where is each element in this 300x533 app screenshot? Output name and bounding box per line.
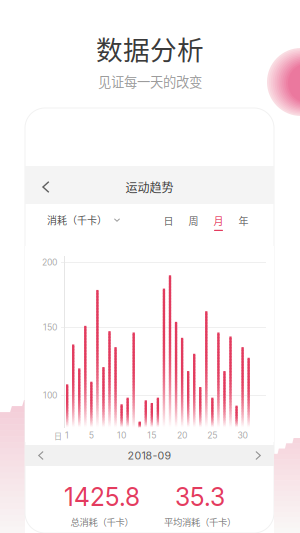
button[interactable]: Previous month [25, 445, 57, 466]
staticText: 20 [177, 430, 187, 440]
staticText: 平均消耗（千卡） [164, 515, 236, 528]
staticText: 1 [65, 430, 69, 440]
button[interactable]: 年 [231, 205, 256, 235]
button[interactable]: 周 [181, 205, 206, 235]
button[interactable]: Next month [242, 445, 274, 466]
button[interactable]: 消耗（千卡） [25, 205, 120, 235]
staticText: 运动趋势 [125, 178, 173, 196]
staticText: 200 [42, 257, 57, 267]
staticText: 日 [163, 213, 173, 228]
staticText: 2018-09 [127, 449, 171, 462]
staticText: 年 [238, 213, 248, 228]
staticText: 100 [43, 390, 57, 400]
button[interactable]: 日 [156, 205, 181, 235]
staticText: 150 [43, 322, 57, 332]
staticText: 数据分析 [96, 29, 204, 68]
staticText: 周 [188, 213, 198, 228]
staticText: 月 [213, 213, 223, 228]
staticText: 15 [147, 430, 156, 440]
staticText: 5 [89, 430, 94, 440]
staticText: 1425.8 [64, 482, 140, 512]
staticText: 10 [117, 430, 126, 440]
staticText: 30 [237, 430, 247, 440]
button[interactable]: Back [25, 166, 64, 204]
staticText: 见证每一天的改变 [98, 72, 202, 91]
button[interactable]: 月 [206, 205, 231, 235]
staticText: 35.3 [175, 482, 225, 512]
staticText: 日 [54, 430, 62, 442]
staticText: 消耗（千卡） [47, 213, 107, 227]
staticText: 25 [207, 430, 217, 440]
staticText: 总消耗（千卡） [70, 515, 133, 528]
